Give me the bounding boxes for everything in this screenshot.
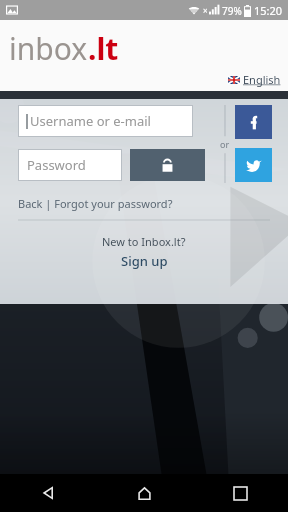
button[interactable]: Home: [124, 474, 164, 512]
staticText: 79%: [222, 4, 242, 18]
button[interactable]: English: [228, 72, 281, 87]
staticText: Back | Forgot your password?: [18, 196, 173, 211]
button[interactable]: Sign up: [121, 252, 168, 270]
button[interactable]: Back | Forgot your password?: [18, 196, 173, 211]
button[interactable]: Password: [18, 149, 122, 181]
staticText: Username or e-mail: [30, 112, 151, 130]
button[interactable]: Sign in with Twitter: [235, 148, 272, 182]
staticText: New to Inbox.lt?: [102, 234, 186, 249]
staticText: inbox: [9, 28, 88, 69]
staticText: ×: [203, 5, 208, 16]
staticText: English: [243, 72, 281, 87]
button[interactable]: Log in: [130, 149, 205, 181]
staticText: 15:20: [254, 3, 283, 18]
staticText: Sign up: [121, 252, 168, 270]
button[interactable]: Username or e-mail: [18, 105, 193, 137]
staticText: or: [220, 138, 230, 150]
staticText: Password: [27, 156, 86, 174]
staticText: .lt: [88, 28, 119, 69]
button[interactable]: Recent apps: [220, 474, 260, 512]
button[interactable]: Back: [28, 474, 68, 512]
button[interactable]: Sign in with Facebook: [235, 105, 272, 139]
